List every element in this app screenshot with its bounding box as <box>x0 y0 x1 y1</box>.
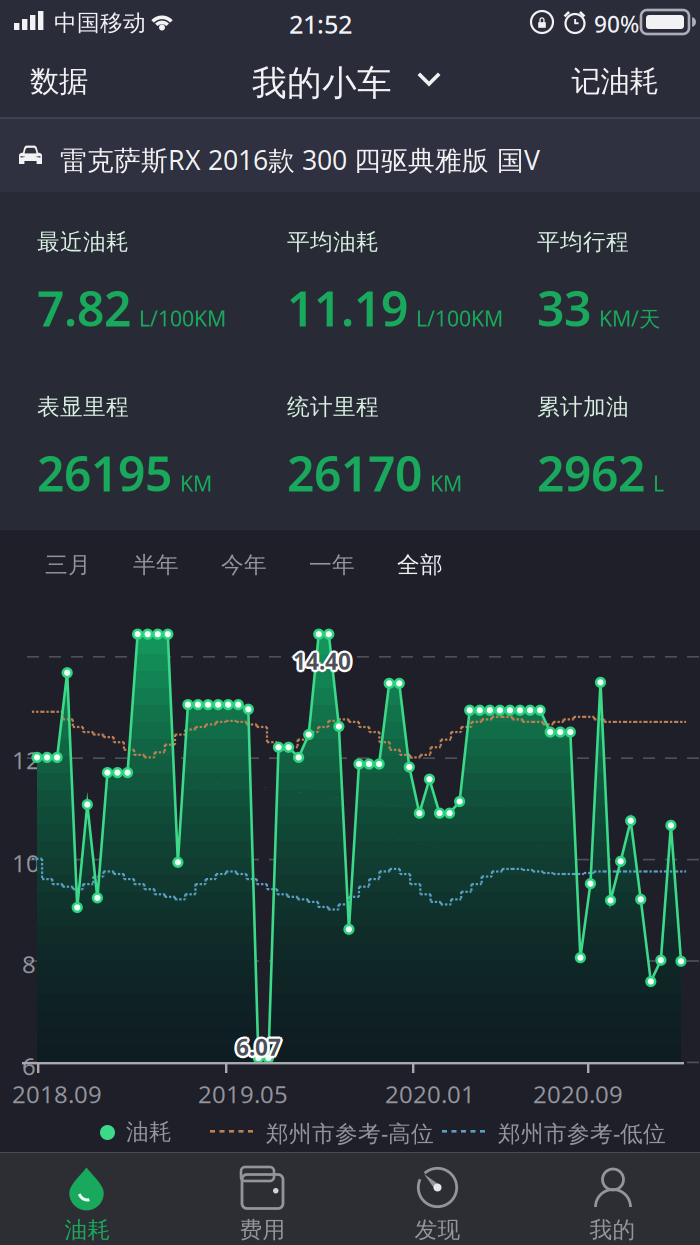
staticText: 一年 <box>309 551 355 579</box>
staticText: 2019.05 <box>198 1078 288 1110</box>
staticText: 6.07 <box>236 1034 281 1064</box>
staticText: KM <box>180 469 212 497</box>
staticText: 费用 <box>239 1216 285 1244</box>
staticText: 最近油耗 <box>37 228 129 256</box>
button[interactable]: 油耗 <box>0 1153 175 1245</box>
staticText: 6.07 <box>238 1034 283 1064</box>
staticText: 中国移动 <box>54 9 146 37</box>
button[interactable]: 发现 <box>350 1153 525 1245</box>
staticText: 累计加油 <box>537 393 629 421</box>
button[interactable]: 一年 <box>288 534 376 596</box>
button[interactable]: 今年 <box>200 534 288 596</box>
staticText: L <box>653 469 664 497</box>
button[interactable]: 费用 <box>175 1153 350 1245</box>
staticText: 2018.09 <box>12 1078 102 1110</box>
staticText: 12 <box>12 744 40 776</box>
staticText: 14.40 <box>293 644 351 674</box>
staticText: 6.07 <box>238 1030 283 1060</box>
staticText: 14.40 <box>293 648 351 678</box>
staticText: 10 <box>12 847 40 879</box>
staticText: 半年 <box>133 551 179 579</box>
staticText: 14.40 <box>291 646 349 676</box>
staticText: 统计里程 <box>287 393 379 421</box>
staticText: 7.82 <box>37 276 131 340</box>
staticText: 表显里程 <box>37 393 129 421</box>
staticText: KM <box>430 469 462 497</box>
button[interactable]: 我的 <box>525 1153 700 1245</box>
staticText: 14.40 <box>295 646 353 676</box>
staticText: 数据 <box>30 63 88 99</box>
staticText: 我的小车 <box>252 62 392 105</box>
staticText: 8 <box>22 948 36 980</box>
staticText: 发现 <box>414 1216 460 1244</box>
staticText: 雷克萨斯RX 2016款 300 四驱典雅版 国V <box>60 142 540 177</box>
staticText: 油耗 <box>126 1118 172 1146</box>
staticText: L/100KM <box>139 304 226 332</box>
staticText: 郑州市参考-高位 <box>266 1118 434 1148</box>
staticText: KM/天 <box>599 304 660 332</box>
staticText: 6.07 <box>234 1032 279 1062</box>
button[interactable]: 半年 <box>112 534 200 596</box>
staticText: 记油耗 <box>571 63 658 99</box>
staticText: 我的 <box>589 1216 635 1244</box>
button[interactable]: 雷克萨斯RX 2016款 300 四驱典雅版 国V <box>0 119 700 192</box>
staticText: L/100KM <box>416 304 503 332</box>
staticText: 11.19 <box>287 276 408 340</box>
staticText: 油耗 <box>64 1216 110 1244</box>
button[interactable]: 我的小车 <box>252 44 452 119</box>
staticText: 21:52 <box>289 7 352 41</box>
staticText: 14.40 <box>295 644 353 674</box>
staticText: 6.07 <box>234 1030 279 1060</box>
staticText: 2020.09 <box>533 1078 623 1110</box>
staticText: 26170 <box>287 441 422 505</box>
staticText: 平均油耗 <box>287 228 379 256</box>
staticText: 6.07 <box>238 1032 283 1062</box>
staticText: 2020.01 <box>385 1078 475 1110</box>
staticText: 平均行程 <box>537 228 629 256</box>
staticText: 33 <box>537 276 591 340</box>
staticText: 郑州市参考-低位 <box>498 1118 666 1148</box>
staticText: 今年 <box>221 551 267 579</box>
staticText: 14.40 <box>291 648 349 678</box>
button[interactable]: 全部 <box>376 534 464 596</box>
staticText: 全部 <box>397 551 443 579</box>
button[interactable]: 数据 <box>0 44 118 119</box>
staticText: 6.07 <box>236 1030 281 1060</box>
staticText: 6.07 <box>236 1032 281 1062</box>
button[interactable]: 三月 <box>24 534 112 596</box>
staticText: 6 <box>22 1050 36 1082</box>
staticText: 14.40 <box>293 646 351 676</box>
staticText: 2962 <box>537 441 645 505</box>
staticText: 14.40 <box>295 648 353 678</box>
staticText: 14.40 <box>291 644 349 674</box>
staticText: 26195 <box>37 441 172 505</box>
staticText: 90% <box>594 9 639 39</box>
staticText: 三月 <box>45 551 91 579</box>
button[interactable]: 记油耗 <box>545 44 685 119</box>
staticText: 6.07 <box>234 1034 279 1064</box>
